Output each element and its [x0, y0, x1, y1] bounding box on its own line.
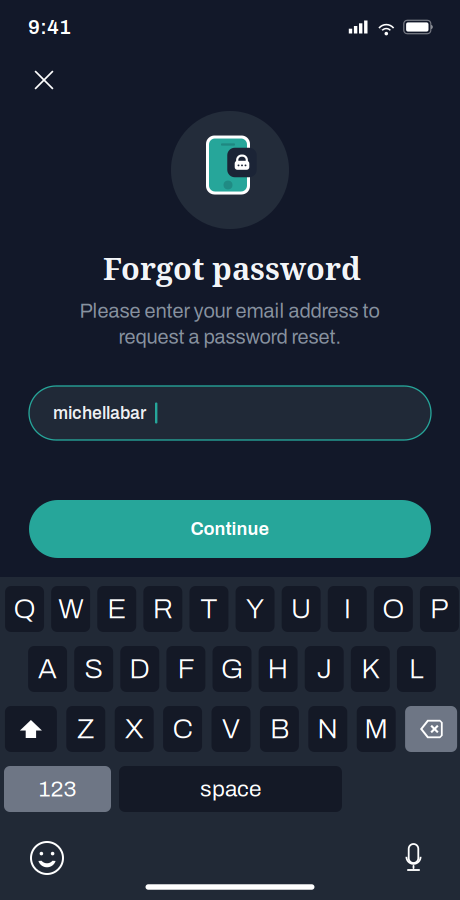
button[interactable]: Close — [20, 56, 68, 104]
button[interactable]: space — [119, 766, 342, 812]
button[interactable]: R — [143, 586, 182, 632]
staticText: 123 — [38, 777, 76, 801]
button[interactable]: E — [97, 586, 136, 632]
staticText: space — [200, 777, 261, 801]
staticText: W — [58, 594, 83, 624]
button[interactable]: A — [28, 646, 67, 692]
staticText: Z — [77, 714, 95, 744]
button[interactable]: Y — [236, 586, 275, 632]
staticText: K — [361, 654, 379, 684]
button[interactable]: U — [282, 586, 321, 632]
button[interactable]: K — [351, 646, 390, 692]
button[interactable]: O — [374, 586, 413, 632]
staticText: T — [200, 594, 217, 624]
button[interactable]: Emoji keyboard — [29, 840, 65, 876]
button[interactable]: Z — [66, 706, 105, 752]
button[interactable]: I — [328, 586, 367, 632]
staticText: U — [291, 594, 312, 624]
staticText: I — [344, 594, 351, 624]
button[interactable]: X — [115, 706, 154, 752]
staticText: Q — [14, 594, 36, 624]
staticText: D — [129, 654, 150, 684]
staticText: M — [364, 714, 388, 744]
staticText: 9:41 — [28, 16, 71, 38]
button[interactable]: Dictation — [404, 843, 423, 872]
staticText: G — [221, 654, 243, 684]
staticText: P — [430, 594, 449, 624]
button[interactable]: P — [420, 586, 459, 632]
button[interactable]: B — [260, 706, 299, 752]
staticText: J — [317, 654, 332, 684]
staticText: Please enter your email address to — [79, 300, 379, 322]
button[interactable]: Shift — [5, 706, 57, 752]
button[interactable]: Q — [5, 586, 44, 632]
button[interactable]: W — [51, 586, 90, 632]
staticText: L — [409, 654, 424, 684]
staticText: S — [84, 654, 103, 684]
button[interactable]: 123 — [4, 766, 111, 812]
button[interactable]: S — [74, 646, 113, 692]
staticText: N — [317, 714, 338, 744]
button[interactable]: D — [120, 646, 159, 692]
button[interactable]: T — [189, 586, 228, 632]
staticText: B — [270, 714, 289, 744]
button[interactable]: Continue — [29, 500, 431, 558]
button[interactable]: G — [212, 646, 251, 692]
staticText: O — [382, 594, 404, 624]
staticText: F — [177, 654, 194, 684]
button[interactable]: L — [397, 646, 436, 692]
staticText: A — [38, 654, 57, 684]
button[interactable]: H — [259, 646, 298, 692]
button[interactable]: C — [163, 706, 202, 752]
staticText: request a password reset. — [118, 326, 341, 348]
staticText: Y — [246, 594, 264, 624]
staticText: Forgot password — [103, 247, 361, 289]
button[interactable]: Delete — [405, 706, 457, 752]
button[interactable]: F — [166, 646, 205, 692]
staticText: C — [173, 714, 193, 744]
button[interactable]: N — [308, 706, 347, 752]
staticText: X — [125, 714, 144, 744]
button[interactable]: J — [305, 646, 344, 692]
staticText: H — [268, 654, 289, 684]
button[interactable]: M — [357, 706, 396, 752]
staticText: R — [153, 594, 173, 624]
button[interactable]: V — [211, 706, 250, 752]
staticText: E — [107, 594, 126, 624]
staticText: V — [222, 714, 240, 744]
staticText: Continue — [190, 519, 269, 539]
staticText: michellabar — [53, 403, 146, 422]
